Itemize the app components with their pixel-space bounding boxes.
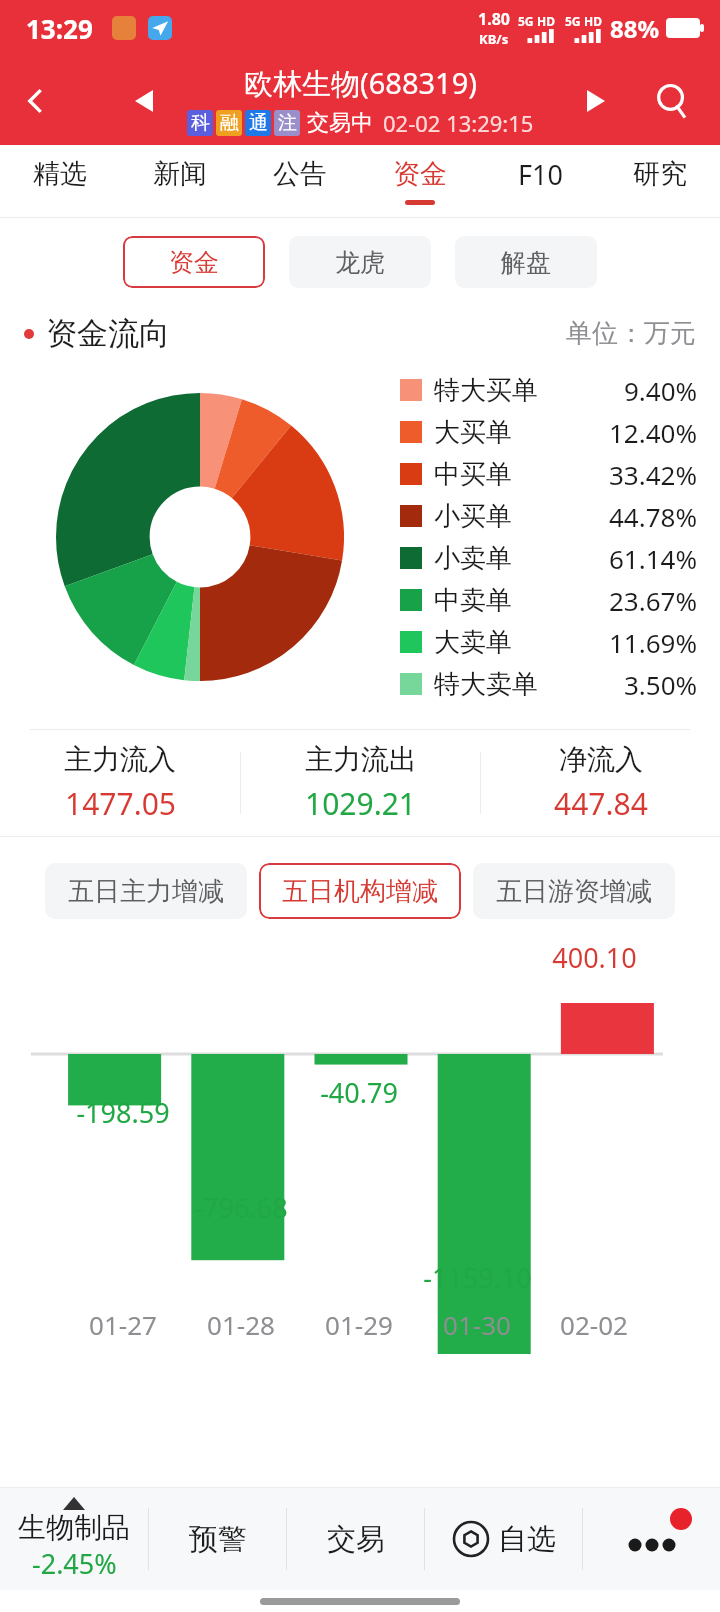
- staticText: 精选: [33, 157, 87, 191]
- staticText: 五日游资增减: [496, 875, 652, 908]
- button[interactable]: 主力流入: [0, 742, 240, 824]
- button[interactable]: 五日机构增减: [259, 863, 461, 919]
- button[interactable]: 五日游资增减: [473, 863, 675, 919]
- button[interactable]: 自选: [425, 1488, 582, 1590]
- staticText: 61.14%: [609, 541, 698, 576]
- staticText: 02-02: [560, 1307, 628, 1342]
- staticText: 科: [191, 111, 210, 135]
- staticText: 生物制品: [18, 1510, 130, 1545]
- staticText: -2.45%: [32, 1545, 117, 1582]
- staticText: 主力流出: [305, 742, 417, 777]
- staticText: 资金: [169, 247, 219, 278]
- button[interactable]: 龙虎: [289, 236, 431, 288]
- button[interactable]: 研究: [600, 145, 720, 217]
- staticText: 11.69%: [609, 625, 698, 660]
- staticText: 中买单: [434, 458, 512, 491]
- staticText: 大卖单: [434, 626, 512, 659]
- staticText: 小买单: [434, 500, 512, 533]
- staticText: 解盘: [501, 247, 551, 278]
- button[interactable]: 预警: [149, 1488, 286, 1590]
- staticText: 1477.05: [65, 783, 176, 824]
- staticText: 88%: [610, 12, 660, 45]
- staticText: 13:29: [26, 11, 93, 46]
- staticText: KB/s: [479, 30, 509, 48]
- staticText: 研究: [633, 157, 687, 191]
- staticText: 主力流入: [64, 742, 176, 777]
- button[interactable]: 资金: [360, 145, 480, 217]
- staticText: 公告: [273, 157, 327, 191]
- staticText: 02-02 13:29:15: [383, 108, 534, 138]
- staticText: 33.42%: [609, 457, 698, 492]
- staticText: 五日机构增减: [282, 875, 438, 908]
- staticText: 23.67%: [609, 583, 698, 618]
- button[interactable]: More options: [583, 1488, 720, 1590]
- staticText: 小卖单: [434, 542, 512, 575]
- staticText: 净流入: [559, 742, 643, 777]
- button[interactable]: 五日主力增减: [45, 863, 247, 919]
- staticText: 融: [220, 111, 239, 135]
- staticText: 交易中: [307, 109, 373, 137]
- staticText: -796.68: [194, 1189, 288, 1226]
- button[interactable]: 主力流出: [241, 742, 480, 824]
- staticText: 资金: [393, 157, 447, 191]
- button[interactable]: 资金: [123, 236, 265, 288]
- staticText: 大买单: [434, 416, 512, 449]
- button[interactable]: F10: [480, 145, 600, 217]
- staticText: 特大卖单: [434, 668, 538, 701]
- staticText: 3.50%: [624, 667, 698, 702]
- staticText: 01-30: [443, 1307, 511, 1342]
- staticText: 交易: [327, 1521, 385, 1558]
- button[interactable]: 交易: [287, 1488, 424, 1590]
- staticText: 通: [249, 111, 268, 135]
- button[interactable]: Next stock: [570, 75, 622, 127]
- staticText: 单位：万元: [566, 317, 696, 350]
- staticText: 中卖单: [434, 584, 512, 617]
- staticText: 龙虎: [335, 247, 385, 278]
- staticText: 特大买单: [434, 374, 538, 407]
- staticText: 400.10: [552, 939, 637, 976]
- button[interactable]: Back: [0, 65, 72, 137]
- button[interactable]: 公告: [240, 145, 360, 217]
- staticText: 五日主力增减: [68, 875, 224, 908]
- staticText: 新闻: [153, 157, 207, 191]
- staticText: 447.84: [554, 783, 648, 824]
- staticText: 1.80: [478, 8, 510, 30]
- staticText: 1029.21: [305, 783, 416, 824]
- staticText: 01-27: [89, 1307, 157, 1342]
- staticText: 自选: [498, 1521, 556, 1558]
- staticText: F10: [518, 156, 563, 193]
- button[interactable]: Previous stock: [118, 75, 170, 127]
- staticText: -40.79: [320, 1074, 398, 1111]
- button[interactable]: Search: [636, 65, 708, 137]
- staticText: 12.40%: [609, 415, 698, 450]
- staticText: HD: [584, 13, 602, 29]
- staticText: 注: [278, 111, 297, 135]
- staticText: 5G: [565, 13, 581, 29]
- staticText: HD: [537, 13, 555, 29]
- button[interactable]: 精选: [0, 145, 120, 217]
- button[interactable]: 新闻: [120, 145, 240, 217]
- staticText: 欧林生物(688319): [244, 63, 477, 103]
- staticText: 5G: [518, 13, 534, 29]
- staticText: 44.78%: [609, 499, 698, 534]
- staticText: -198.59: [76, 1094, 170, 1131]
- staticText: 9.40%: [624, 373, 698, 408]
- staticText: 01-29: [325, 1307, 393, 1342]
- staticText: 预警: [189, 1521, 247, 1558]
- staticText: 01-28: [207, 1307, 275, 1342]
- staticText: -1159.10: [423, 1259, 532, 1296]
- button[interactable]: 生物制品: [0, 1497, 148, 1582]
- staticText: 资金流向: [46, 314, 170, 353]
- button[interactable]: 解盘: [455, 236, 597, 288]
- button[interactable]: 净流入: [481, 742, 720, 824]
